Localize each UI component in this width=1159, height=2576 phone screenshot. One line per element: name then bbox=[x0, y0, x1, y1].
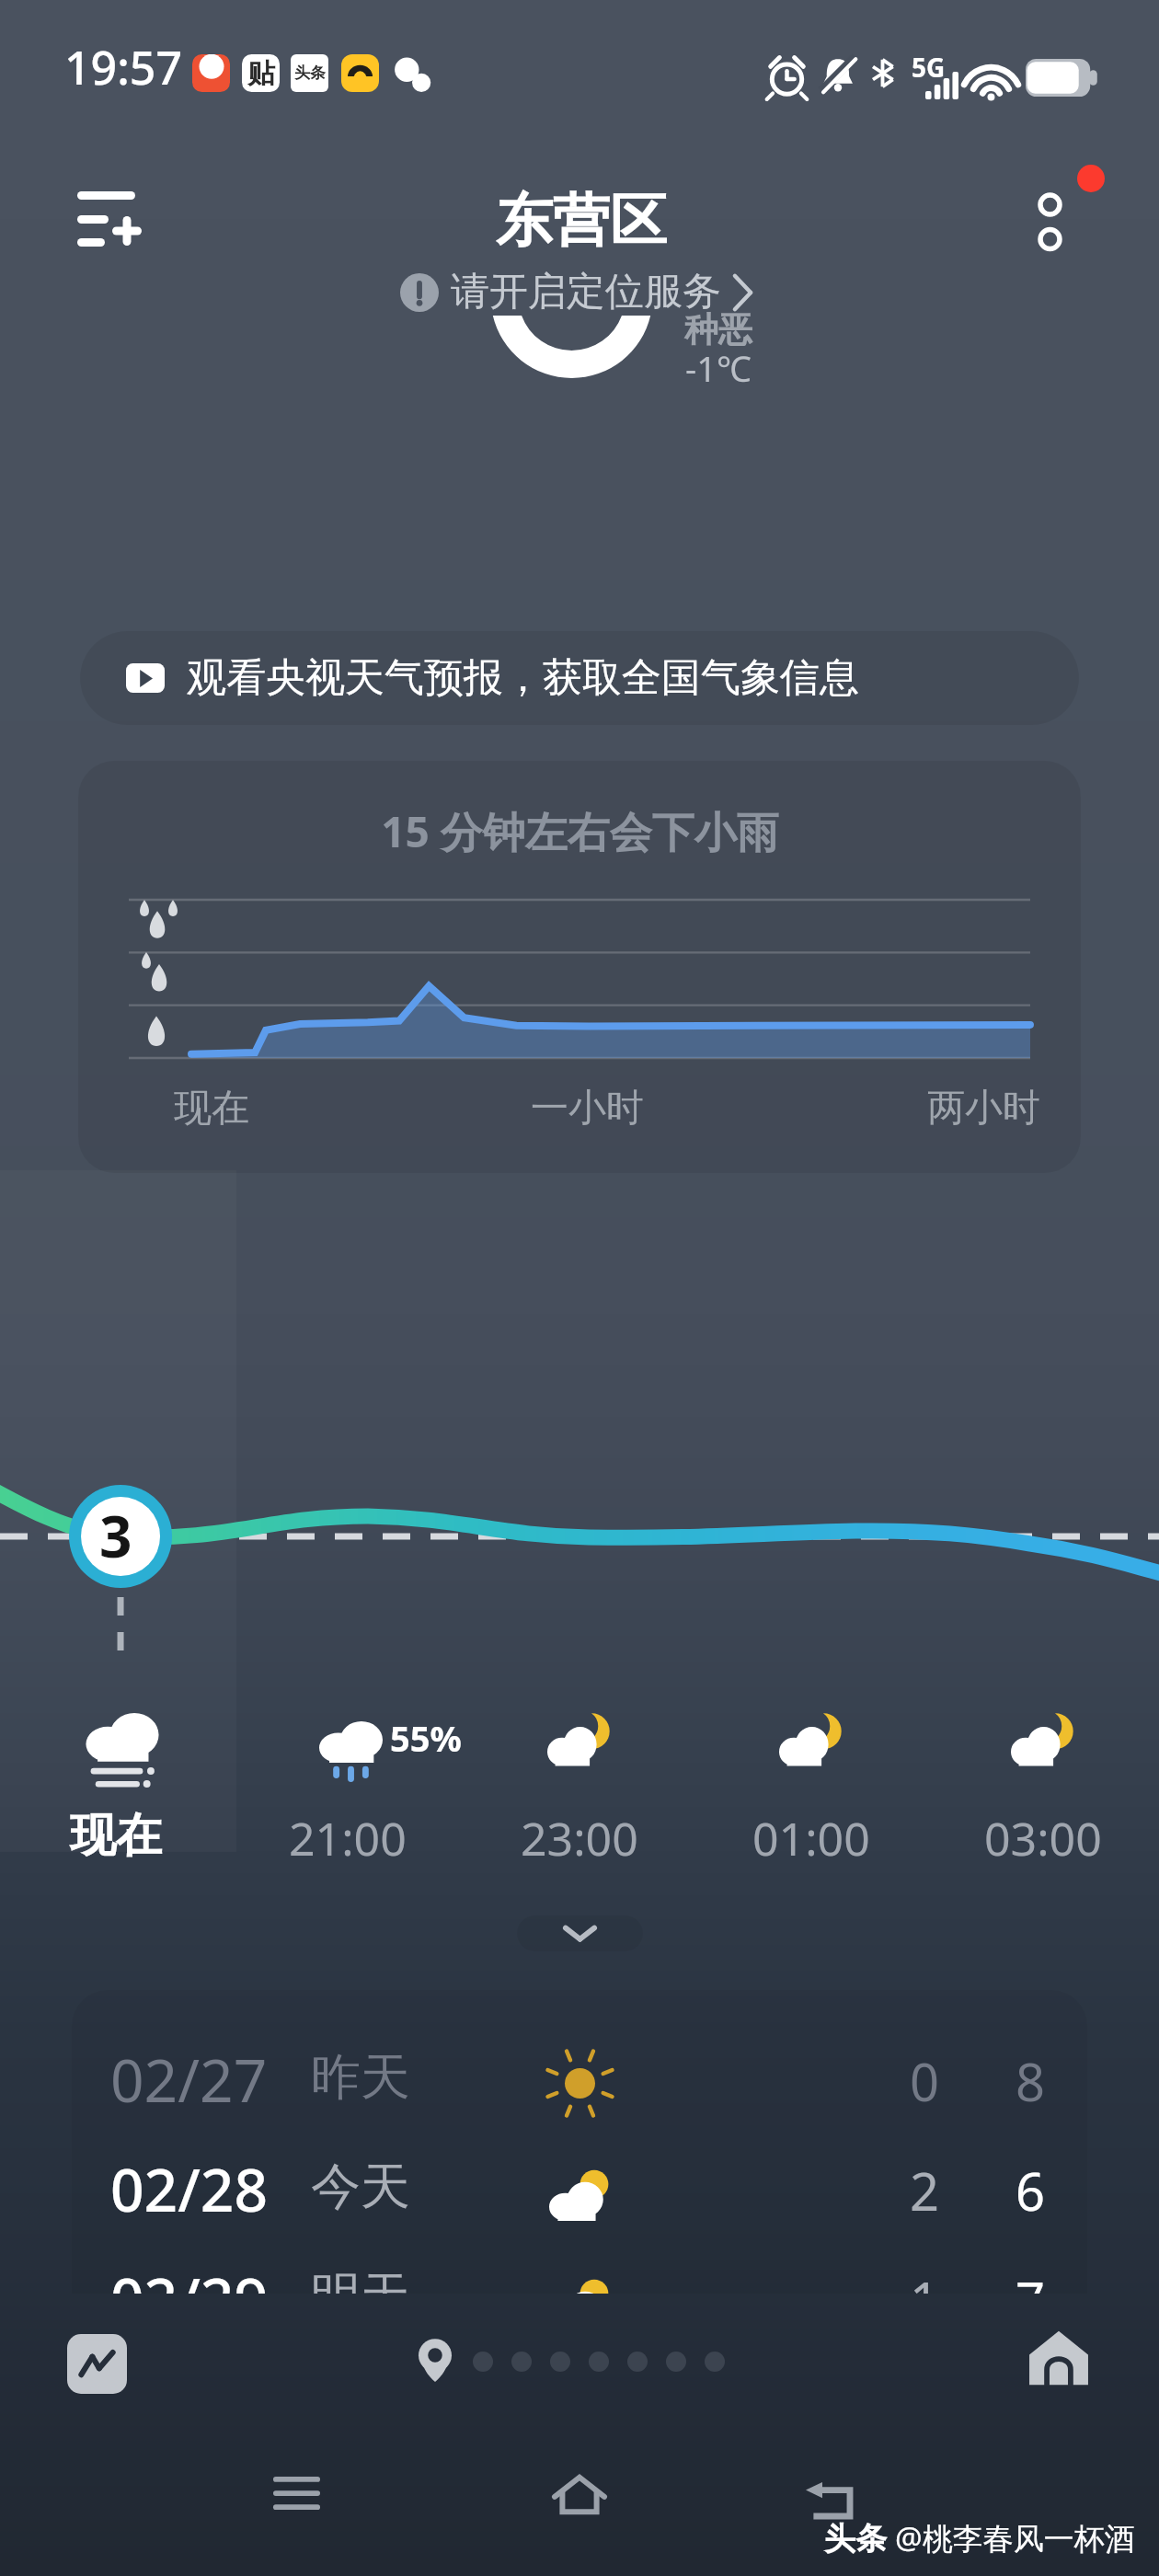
button[interactable]: 03:00 bbox=[927, 1711, 1159, 1910]
button[interactable] bbox=[550, 2352, 570, 2372]
staticText: 55% bbox=[390, 1714, 462, 1762]
staticText: 03:00 bbox=[984, 1807, 1102, 1869]
staticText: 23:00 bbox=[521, 1807, 638, 1869]
staticText: 5G bbox=[912, 50, 946, 85]
staticText: 头条 bbox=[824, 2519, 887, 2559]
staticText: 2 bbox=[910, 2156, 940, 2225]
button[interactable]: 55% bbox=[232, 1711, 464, 1910]
staticText: 1 bbox=[910, 2265, 940, 2294]
button[interactable]: 02/27 bbox=[72, 2051, 1087, 2161]
staticText: 今天 bbox=[311, 2156, 410, 2218]
staticText: 3 bbox=[99, 1497, 132, 1574]
staticText: 一小时 bbox=[531, 1085, 644, 1133]
button[interactable]: Expand bbox=[517, 1915, 643, 1951]
button[interactable]: 15 分钟左右会下小雨 bbox=[78, 761, 1081, 1173]
button[interactable]: Add city bbox=[69, 168, 168, 268]
staticText: 19:57 bbox=[64, 36, 182, 98]
button[interactable]: 请开启定位服务 bbox=[400, 268, 755, 316]
button[interactable]: 观看央视天气预报，获取全国气象信息 bbox=[80, 631, 1079, 725]
staticText: 贴 bbox=[247, 56, 275, 91]
staticText: 7 bbox=[1016, 2265, 1046, 2294]
staticText: 8 bbox=[1016, 2046, 1046, 2116]
staticText: 02/28 bbox=[110, 2149, 269, 2229]
staticText: 6 bbox=[1016, 2156, 1046, 2225]
staticText: 21:00 bbox=[289, 1807, 407, 1869]
button[interactable]: 现在 bbox=[0, 1711, 232, 1910]
staticText: 头条 bbox=[294, 63, 326, 83]
staticText: 观看央视天气预报，获取全国气象信息 bbox=[187, 653, 859, 703]
staticText: 昨天 bbox=[311, 2046, 410, 2109]
staticText: 明天 bbox=[311, 2265, 410, 2294]
staticText: 种恶 bbox=[684, 308, 752, 351]
staticText: 请开启定位服务 bbox=[451, 268, 721, 316]
button[interactable]: 02/29 bbox=[72, 2270, 1087, 2294]
button[interactable] bbox=[511, 2352, 532, 2372]
staticText: 两小时 bbox=[927, 1085, 1040, 1133]
staticText: 02/27 bbox=[110, 2040, 268, 2120]
button[interactable]: More options bbox=[1016, 144, 1126, 254]
button[interactable]: 01:00 bbox=[695, 1711, 927, 1910]
staticText: 01:00 bbox=[752, 1807, 870, 1869]
button[interactable]: Trend chart bbox=[67, 2334, 127, 2394]
button[interactable] bbox=[627, 2352, 648, 2372]
staticText: 0 bbox=[910, 2046, 940, 2116]
button[interactable] bbox=[705, 2352, 725, 2372]
button[interactable]: 02/28 bbox=[72, 2160, 1087, 2271]
button[interactable] bbox=[473, 2352, 493, 2372]
staticText: -1℃ bbox=[685, 344, 752, 392]
staticText: 15 分钟左右会下小雨 bbox=[381, 802, 779, 860]
button[interactable]: 23:00 bbox=[464, 1711, 695, 1910]
button[interactable] bbox=[589, 2352, 609, 2372]
button[interactable] bbox=[666, 2352, 686, 2372]
staticText: @桃李春风一杯酒 bbox=[895, 2517, 1135, 2559]
staticText: 东营区 bbox=[496, 185, 667, 257]
staticText: 现在 bbox=[70, 1807, 162, 1865]
button[interactable]: Home bbox=[1027, 2328, 1090, 2391]
staticText: 02/29 bbox=[110, 2259, 269, 2294]
staticText: 现在 bbox=[174, 1085, 249, 1133]
